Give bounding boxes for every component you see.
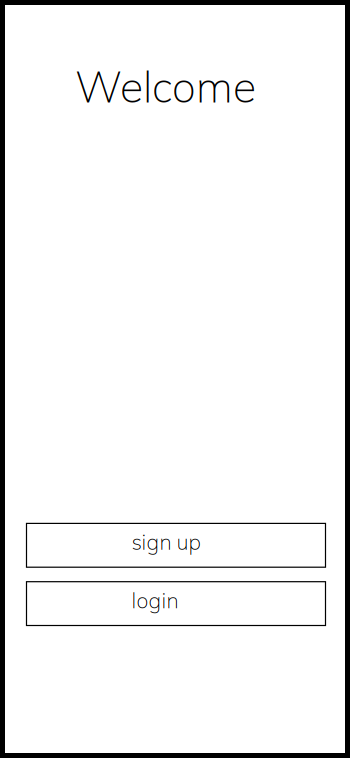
staticText: login — [131, 587, 178, 613]
staticText: sign up — [131, 528, 200, 555]
staticText: Welcome — [75, 59, 256, 113]
button[interactable]: sign up — [26, 523, 325, 567]
button[interactable]: login — [26, 582, 325, 625]
